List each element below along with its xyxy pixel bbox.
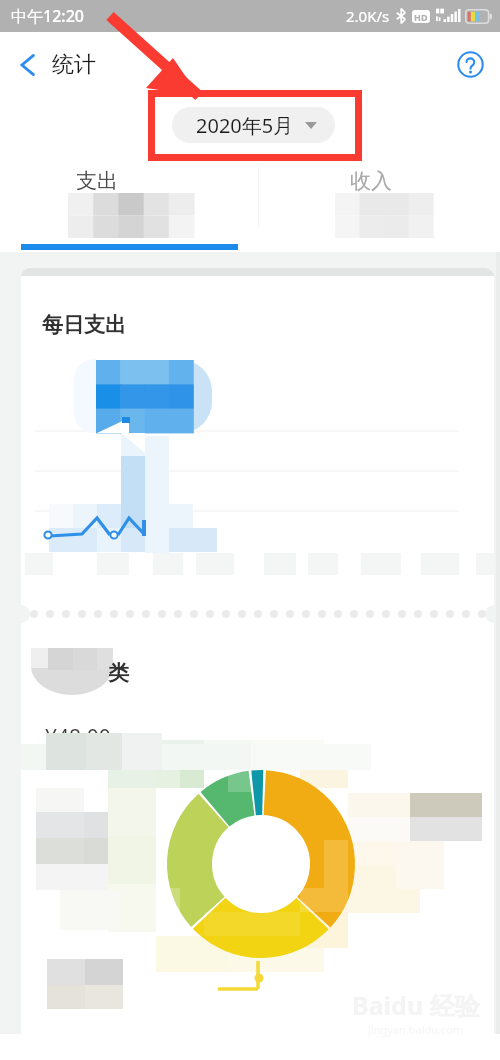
button[interactable]: Help: [448, 42, 492, 86]
staticText: HD: [414, 11, 428, 23]
staticText: 类: [108, 660, 129, 686]
staticText: 2.0K/s: [346, 6, 390, 26]
staticText: 每日支出: [42, 312, 126, 338]
button[interactable]: 收入: [258, 160, 500, 252]
other: Back: [20, 52, 36, 78]
staticText: 中午12:20: [11, 5, 84, 27]
button[interactable]: Back: [14, 45, 102, 85]
staticText: ¥48.00: [45, 723, 111, 752]
button[interactable]: 支出: [0, 160, 258, 252]
staticText: 支出: [76, 168, 118, 194]
staticText: 统计: [52, 51, 96, 79]
staticText: 收入: [350, 168, 392, 194]
button[interactable]: 2020年5月: [172, 107, 335, 143]
staticText: Baidu 经验: [352, 988, 480, 1022]
staticText: 2020年5月: [196, 112, 294, 139]
